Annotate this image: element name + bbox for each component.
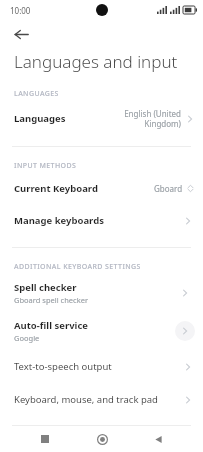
staticText: Manage keyboards <box>14 214 104 227</box>
button[interactable]: Spell checker <box>0 274 203 312</box>
staticText: Text-to-speech output <box>14 360 112 373</box>
button[interactable]: Keyboard, mouse, and track pad <box>0 383 203 416</box>
staticText: Spell checker <box>14 281 77 294</box>
staticText: Keyboard, mouse, and track pad <box>14 393 158 406</box>
button[interactable]: Back <box>147 428 169 450</box>
staticText: Gboard <box>154 183 183 194</box>
staticText: INPUT METHODS <box>14 161 77 171</box>
button[interactable]: Auto-fill service <box>0 312 203 350</box>
staticText: Languages and input <box>14 50 178 73</box>
staticText: Current Keyboard <box>14 182 98 195</box>
button[interactable]: Manage keyboards <box>0 204 203 237</box>
staticText: Auto-fill service <box>14 319 89 332</box>
staticText: Gboard spell checker <box>14 295 88 305</box>
button[interactable]: Text-to-speech output <box>0 350 203 383</box>
staticText: 10:00 <box>10 5 31 16</box>
button[interactable]: Current Keyboard <box>0 173 203 204</box>
staticText: LANGUAGES <box>14 89 59 99</box>
staticText: Google <box>14 333 40 343</box>
staticText: Languages <box>14 112 66 125</box>
button[interactable]: Languages <box>0 101 203 136</box>
button[interactable]: Recent apps <box>34 428 56 450</box>
button[interactable]: Home <box>91 428 113 450</box>
staticText: ADDITIONAL KEYBOARD SETTINGS <box>14 262 141 272</box>
staticText: English (United Kingdom) <box>124 108 181 129</box>
button[interactable]: Back <box>8 21 34 47</box>
